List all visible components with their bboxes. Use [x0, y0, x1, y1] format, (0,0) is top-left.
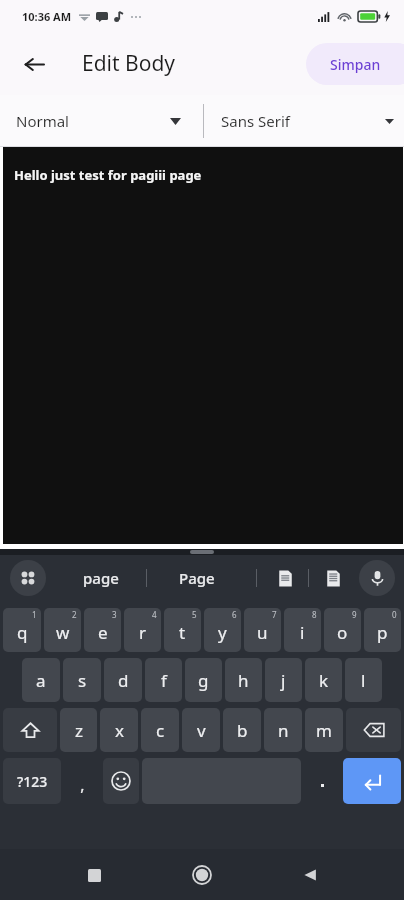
- staticText: 5: [192, 609, 197, 620]
- button[interactable]: g: [185, 658, 222, 702]
- button[interactable]: j: [265, 658, 302, 702]
- button[interactable]: w: [44, 608, 81, 652]
- staticText: 6: [232, 609, 237, 620]
- button[interactable]: h: [225, 658, 262, 702]
- button[interactable]: [304, 755, 340, 807]
- staticText: z: [75, 719, 83, 742]
- button[interactable]: Back: [12, 42, 56, 86]
- button[interactable]: Recents: [72, 853, 116, 897]
- staticText: q: [17, 621, 28, 644]
- button[interactable]: Emoji: [103, 758, 139, 804]
- button[interactable]: Simpan: [306, 43, 404, 85]
- staticText: Normal: [16, 111, 69, 131]
- staticText: 8: [312, 609, 317, 620]
- button[interactable]: z: [60, 708, 97, 752]
- button[interactable]: y: [204, 608, 241, 652]
- staticText: 7: [272, 609, 277, 620]
- staticText: d: [118, 669, 129, 692]
- staticText: r: [139, 621, 147, 644]
- button[interactable]: Paste: [316, 561, 350, 595]
- button[interactable]: page: [58, 558, 144, 598]
- button[interactable]: a: [22, 658, 60, 702]
- staticText: s: [78, 669, 87, 692]
- staticText: h: [238, 669, 249, 692]
- button[interactable]: p: [364, 608, 401, 652]
- button[interactable]: k: [305, 658, 342, 702]
- button[interactable]: t: [164, 608, 201, 652]
- button[interactable]: Shift: [3, 708, 57, 752]
- button[interactable]: d: [104, 658, 142, 702]
- staticText: p: [377, 621, 388, 644]
- staticText: 2: [72, 609, 77, 620]
- staticText: o: [337, 621, 348, 644]
- button[interactable]: o: [324, 608, 361, 652]
- staticText: Sans Serif: [221, 111, 290, 131]
- button[interactable]: Home: [180, 853, 224, 897]
- button[interactable]: e: [84, 608, 121, 652]
- button[interactable]: Voice input: [359, 560, 395, 596]
- staticText: m: [316, 719, 332, 742]
- staticText: k: [319, 669, 329, 692]
- button[interactable]: Backspace: [346, 708, 401, 752]
- staticText: w: [56, 621, 70, 644]
- staticText: a: [36, 669, 46, 692]
- button[interactable]: ?123: [3, 758, 61, 804]
- button[interactable]: Normal: [0, 95, 203, 147]
- staticText: Page: [179, 568, 215, 588]
- button[interactable]: Back: [288, 853, 332, 897]
- staticText: 1: [32, 609, 37, 620]
- staticText: page: [83, 568, 119, 588]
- staticText: ?123: [17, 772, 48, 791]
- button[interactable]: x: [100, 708, 138, 752]
- staticText: Hello just test for pagiii page: [14, 166, 202, 184]
- button[interactable]: m: [305, 708, 343, 752]
- staticText: g: [198, 669, 209, 692]
- staticText: y: [218, 621, 227, 644]
- button[interactable]: Keyboard options: [10, 560, 46, 596]
- button[interactable]: ,: [64, 755, 100, 807]
- button[interactable]: b: [223, 708, 261, 752]
- button[interactable]: f: [145, 658, 182, 702]
- button[interactable]: s: [63, 658, 101, 702]
- staticText: l: [361, 669, 366, 692]
- staticText: i: [300, 621, 305, 644]
- button[interactable]: l: [345, 658, 382, 702]
- staticText: f: [161, 669, 167, 692]
- button[interactable]: Enter: [343, 758, 401, 804]
- button[interactable]: Hello just test for pagiii page: [3, 147, 403, 544]
- staticText: b: [237, 719, 248, 742]
- staticText: 9: [352, 609, 357, 620]
- staticText: Edit Body: [82, 49, 176, 78]
- button[interactable]: r: [124, 608, 161, 652]
- button[interactable]: Page: [152, 558, 242, 598]
- staticText: Simpan: [330, 55, 381, 74]
- staticText: e: [98, 621, 108, 644]
- button[interactable]: v: [182, 708, 220, 752]
- staticText: x: [115, 719, 124, 742]
- staticText: j: [281, 669, 286, 692]
- staticText: ,: [80, 774, 85, 796]
- button[interactable]: Clipboard: [268, 561, 302, 595]
- staticText: v: [197, 719, 206, 742]
- staticText: 3: [112, 609, 117, 620]
- staticText: 10:36 AM: [22, 9, 72, 24]
- staticText: 4: [152, 609, 157, 620]
- button[interactable]: u: [244, 608, 281, 652]
- button[interactable]: c: [141, 708, 179, 752]
- button[interactable]: q: [3, 608, 41, 652]
- staticText: 0: [392, 609, 397, 620]
- staticText: t: [179, 621, 186, 644]
- button[interactable]: i: [284, 608, 321, 652]
- staticText: c: [156, 719, 165, 742]
- button[interactable]: Sans Serif: [204, 95, 404, 147]
- staticText: u: [257, 621, 268, 644]
- button[interactable]: n: [264, 708, 302, 752]
- staticText: n: [278, 719, 289, 742]
